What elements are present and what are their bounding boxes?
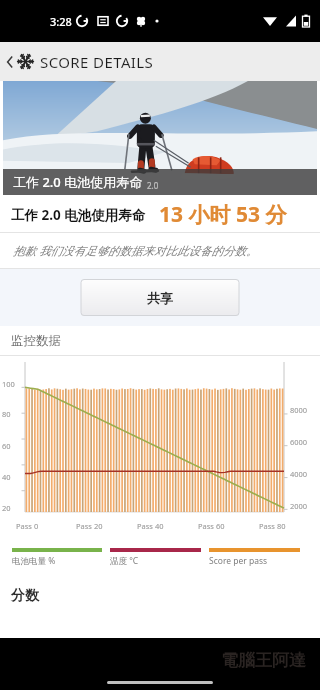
staticText: 分数 [11,587,39,605]
staticText: 电池电量 % [12,555,56,567]
staticText: 工作 2.0 电池使用寿命 [13,173,143,191]
staticText: 8000 [290,405,308,415]
button[interactable]: 共享 [81,280,239,316]
staticText: Pass 40 [137,521,164,531]
staticText: Pass 60 [198,521,225,531]
staticText: 80 [2,409,11,419]
staticText: 监控数据 [11,333,61,349]
staticText: 13 小时 53 分 [159,200,287,229]
staticText: Pass 0 [16,521,39,531]
staticText: 3:28 [50,14,72,29]
staticText: 20 [2,503,11,513]
staticText: 抱歉 我们没有足够的数据来对比此设备的分数。 [13,243,258,259]
staticText: 共享 [147,290,173,306]
staticText: 温度 °C [110,555,139,567]
staticText: Pass 20 [76,521,103,531]
staticText: 6000 [290,437,308,447]
staticText: 60 [2,441,11,451]
staticText: 2.0 [147,180,159,191]
staticText: 4000 [290,469,308,479]
staticText: 2000 [290,501,308,511]
staticText: 40 [2,472,11,482]
staticText: 工作 2.0 电池使用寿命 [11,206,146,224]
button[interactable]: Back [3,42,160,81]
staticText: Score per pass [209,555,268,567]
staticText: SCORE DETAILS [40,52,154,72]
staticText: 100 [2,379,15,389]
staticText: Pass 80 [259,521,286,531]
staticText: 電腦王阿達 [221,650,306,671]
